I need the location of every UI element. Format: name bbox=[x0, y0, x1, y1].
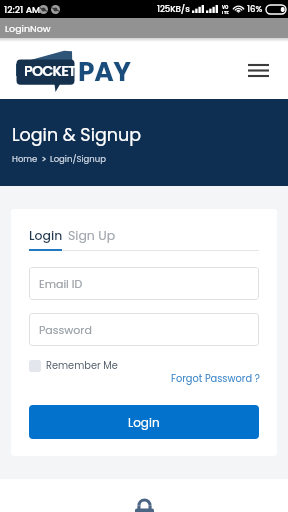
staticText: Login & Signup bbox=[12, 123, 142, 148]
button[interactable]: Password bbox=[29, 313, 259, 346]
button[interactable]: Login bbox=[29, 405, 259, 439]
staticText: POCKET bbox=[24, 61, 76, 81]
staticText: LTE bbox=[222, 11, 229, 14]
button[interactable]: Forgot Password ? bbox=[171, 372, 260, 386]
button[interactable]: PocketPay bbox=[11, 50, 141, 95]
button[interactable]: Remember Me bbox=[29, 359, 118, 373]
staticText: 125KB/s bbox=[157, 3, 190, 15]
button[interactable]: Login bbox=[29, 227, 63, 244]
staticText: Forgot Password ? bbox=[171, 372, 260, 386]
staticText: PAY bbox=[78, 53, 131, 90]
staticText: Password bbox=[39, 322, 92, 337]
staticText: VO bbox=[222, 5, 229, 11]
staticText: 12:21 AM bbox=[4, 3, 41, 16]
staticText: Login/Signup bbox=[50, 153, 106, 165]
staticText: Login bbox=[128, 414, 160, 431]
button[interactable]: Sign Up bbox=[68, 227, 116, 244]
staticText: Remember Me bbox=[46, 359, 118, 373]
button[interactable]: Menu bbox=[241, 52, 275, 86]
staticText: Email ID bbox=[39, 276, 83, 291]
staticText: LoginNow bbox=[5, 22, 51, 35]
staticText: 16% bbox=[247, 3, 263, 15]
staticText: Login bbox=[29, 227, 63, 244]
button[interactable]: Home bbox=[12, 153, 38, 165]
button[interactable]: Email ID bbox=[29, 267, 259, 300]
staticText: Sign Up bbox=[68, 227, 116, 244]
